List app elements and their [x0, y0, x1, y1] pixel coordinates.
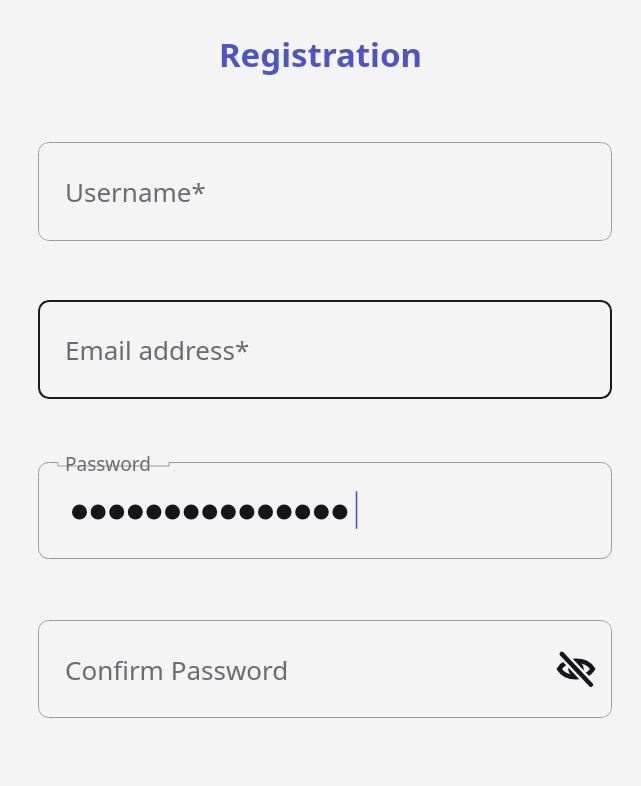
staticText: Username* [65, 174, 206, 209]
button[interactable]: Show password [552, 645, 600, 693]
button[interactable]: Email address* [38, 300, 612, 399]
staticText: Registration [0, 32, 641, 77]
button[interactable]: Username* [38, 142, 612, 241]
staticText: Password [65, 451, 151, 477]
button[interactable]: Password [38, 462, 612, 559]
staticText: Confirm Password [65, 652, 289, 687]
staticText: Email address* [65, 332, 250, 367]
button[interactable]: Confirm Password [38, 620, 612, 718]
